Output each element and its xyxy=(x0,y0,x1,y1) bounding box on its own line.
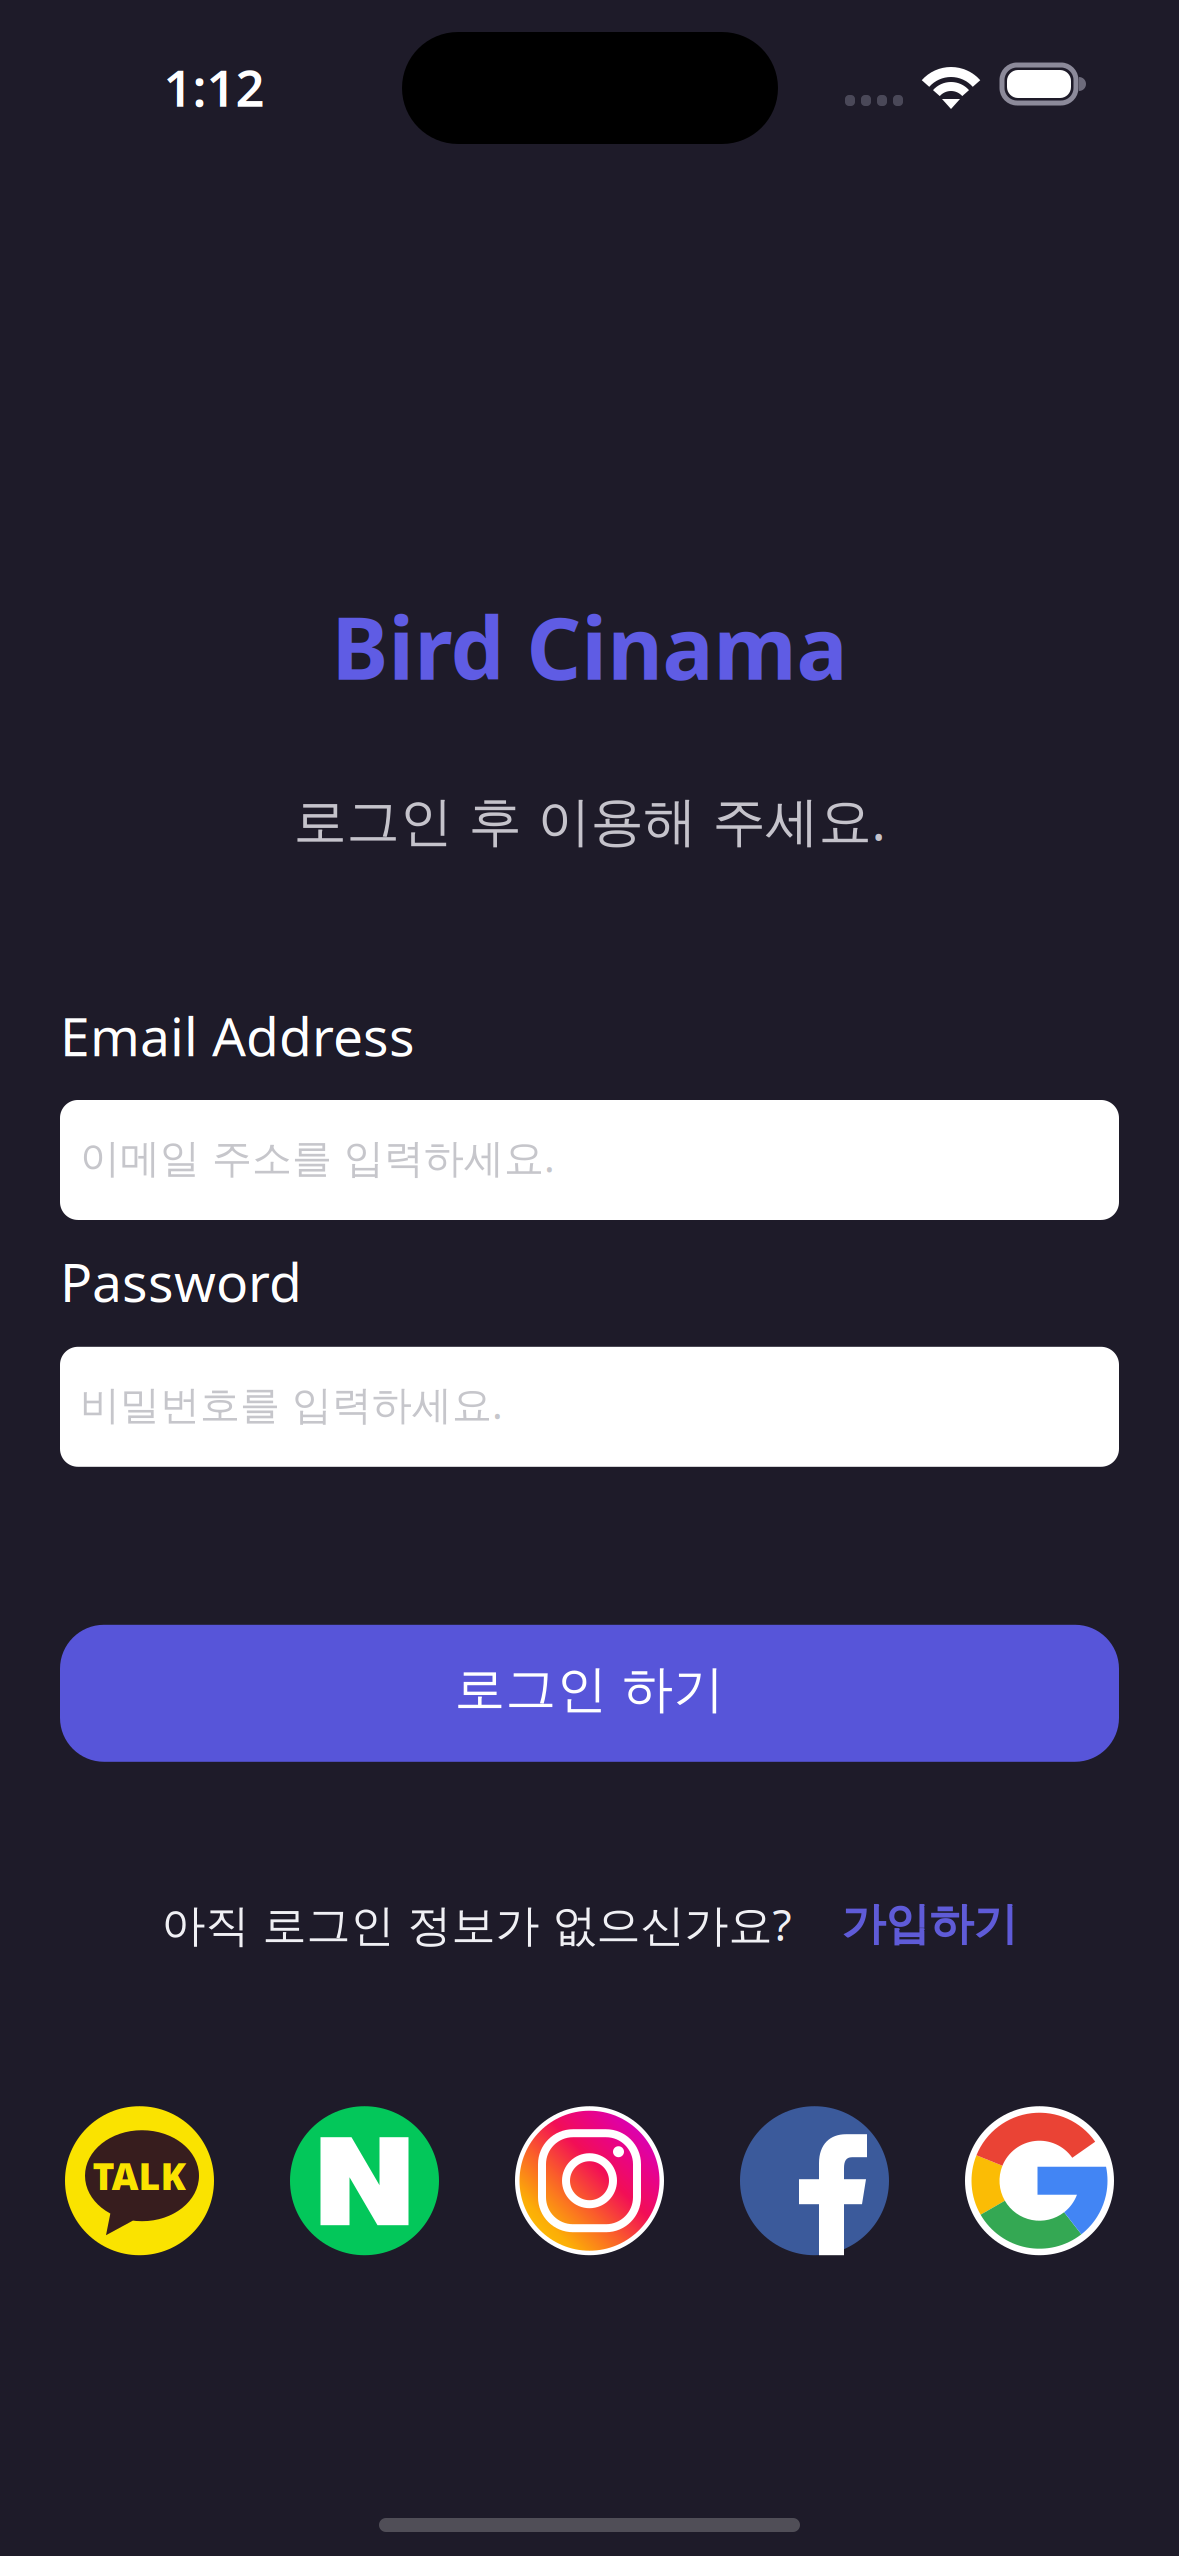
button[interactable]: 비밀번호를 입력하세요. xyxy=(60,1347,1119,1467)
button[interactable]: Sign in with Facebook xyxy=(740,2106,889,2255)
button[interactable]: Sign in with Naver xyxy=(290,2106,439,2255)
staticText: 로그인 후 이용해 주세요. xyxy=(293,784,885,855)
button[interactable]: Sign in with Google xyxy=(965,2106,1114,2255)
button[interactable]: Sign in with Instagram xyxy=(515,2106,664,2255)
staticText: 아직 로그인 정보가 없으신가요? xyxy=(161,1895,791,1953)
button[interactable]: 로그인 하기 xyxy=(60,1625,1119,1762)
staticText: 1:12 xyxy=(163,53,264,121)
staticText: TALK xyxy=(92,2151,186,2200)
staticText: 로그인 하기 xyxy=(454,1658,724,1720)
staticText: 이메일 주소를 입력하세요. xyxy=(80,1130,555,1183)
staticText: 비밀번호를 입력하세요. xyxy=(80,1377,503,1430)
button[interactable]: Sign in with Kakao xyxy=(65,2106,214,2255)
button[interactable]: 가입하기 xyxy=(841,1897,1017,1951)
staticText: Email Address xyxy=(60,1000,415,1071)
button[interactable]: 이메일 주소를 입력하세요. xyxy=(60,1100,1119,1220)
staticText: Bird Cinama xyxy=(331,590,847,703)
staticText: 가입하기 xyxy=(841,1897,1017,1951)
staticText: Password xyxy=(60,1246,302,1317)
